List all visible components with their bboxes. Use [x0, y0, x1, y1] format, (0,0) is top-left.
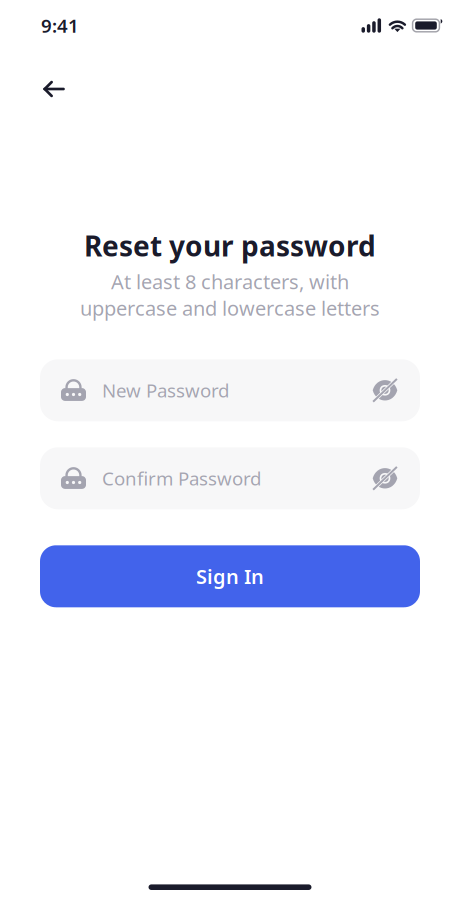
- button[interactable]: New Password: [40, 359, 420, 421]
- button[interactable]: Show password: [361, 447, 409, 509]
- staticText: Reset your password: [84, 227, 376, 264]
- button[interactable]: Confirm Password: [40, 447, 420, 509]
- staticText: New Password: [102, 378, 229, 403]
- staticText: 9:41: [41, 13, 79, 38]
- staticText: Sign In: [196, 563, 264, 590]
- button[interactable]: Show password: [361, 359, 409, 421]
- staticText: Confirm Password: [102, 466, 261, 491]
- button[interactable]: Back: [32, 67, 76, 111]
- staticText: uppercase and lowercase letters: [80, 295, 380, 321]
- staticText: At least 8 characters, with: [111, 268, 349, 295]
- button[interactable]: Sign In: [40, 545, 420, 607]
